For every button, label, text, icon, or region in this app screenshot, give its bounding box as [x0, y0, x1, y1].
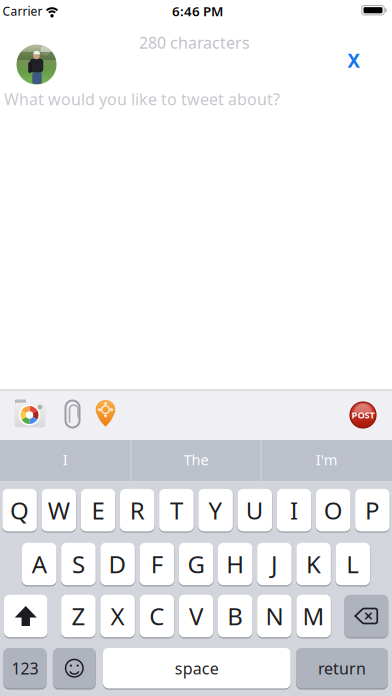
button[interactable]: Q: [2, 489, 37, 531]
staticText: S: [72, 548, 85, 580]
staticText: POST: [351, 409, 374, 421]
staticText: L: [346, 548, 359, 580]
button[interactable]: I: [5, 440, 125, 478]
button[interactable]: D: [100, 543, 135, 585]
staticText: W: [48, 494, 70, 526]
button[interactable]: R: [120, 489, 154, 531]
button[interactable]: G: [179, 543, 213, 585]
staticText: O: [324, 494, 343, 526]
button[interactable]: [4, 595, 47, 637]
button[interactable]: [95, 399, 115, 427]
staticText: M: [303, 600, 325, 632]
button[interactable]: V: [179, 595, 213, 637]
button[interactable]: space: [103, 648, 291, 688]
button[interactable]: [62, 399, 82, 429]
button[interactable]: L: [336, 543, 370, 585]
button[interactable]: return: [296, 648, 388, 688]
staticText: A: [32, 548, 47, 580]
button[interactable]: X: [100, 595, 135, 637]
button[interactable]: I'm: [267, 440, 387, 478]
button[interactable]: J: [257, 543, 292, 585]
staticText: return: [318, 658, 366, 679]
button[interactable]: [13, 398, 47, 428]
button[interactable]: Y: [198, 489, 233, 531]
staticText: I: [63, 450, 68, 469]
button[interactable]: POST: [348, 401, 378, 429]
staticText: G: [187, 548, 204, 580]
staticText: P: [365, 494, 380, 526]
staticText: 6:46 PM: [172, 2, 223, 20]
staticText: U: [246, 494, 264, 526]
button[interactable]: M: [296, 595, 331, 637]
staticText: N: [265, 600, 283, 632]
staticText: space: [175, 658, 219, 679]
button[interactable]: 123: [4, 648, 46, 688]
staticText: C: [149, 600, 164, 632]
button[interactable]: B: [218, 595, 252, 637]
button[interactable]: The: [136, 440, 256, 478]
button[interactable]: X: [336, 45, 372, 75]
staticText: What would you like to tweet about?: [4, 88, 280, 110]
staticText: Y: [209, 494, 223, 526]
staticText: D: [109, 548, 127, 580]
button[interactable]: F: [140, 543, 174, 585]
button[interactable]: U: [238, 489, 272, 531]
staticText: H: [226, 548, 244, 580]
staticText: Z: [71, 600, 85, 632]
staticText: 280 characters: [139, 32, 250, 53]
button[interactable]: [344, 595, 388, 637]
staticText: X: [347, 48, 360, 73]
staticText: V: [189, 600, 203, 632]
button[interactable]: T: [159, 489, 194, 531]
staticText: Q: [10, 494, 29, 526]
button[interactable]: A: [22, 543, 56, 585]
staticText: I'm: [316, 450, 338, 469]
button[interactable]: H: [218, 543, 252, 585]
button[interactable]: E: [81, 489, 115, 531]
staticText: E: [91, 494, 104, 526]
button[interactable]: P: [355, 489, 390, 531]
staticText: K: [306, 548, 321, 580]
staticText: The: [183, 450, 208, 469]
button[interactable]: N: [257, 595, 292, 637]
staticText: Carrier: [2, 3, 42, 19]
staticText: T: [170, 494, 183, 526]
button[interactable]: O: [316, 489, 350, 531]
staticText: J: [271, 548, 278, 580]
staticText: R: [130, 494, 145, 526]
staticText: I: [290, 494, 298, 526]
button[interactable]: Z: [61, 595, 96, 637]
button[interactable]: S: [61, 543, 96, 585]
staticText: F: [151, 548, 163, 580]
button[interactable]: [16, 44, 56, 84]
button[interactable]: K: [296, 543, 331, 585]
button[interactable]: [53, 648, 96, 688]
button[interactable]: W: [42, 489, 76, 531]
button[interactable]: I: [277, 489, 311, 531]
staticText: B: [227, 600, 243, 632]
staticText: X: [111, 600, 125, 632]
button[interactable]: C: [140, 595, 174, 637]
staticText: 123: [11, 658, 38, 679]
